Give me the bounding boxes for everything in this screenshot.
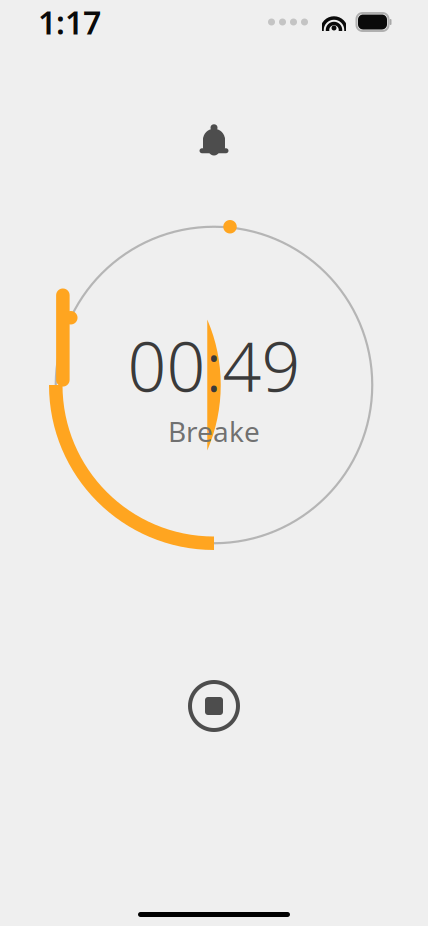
staticText: 00:49 — [127, 320, 300, 411]
staticText: 1:17 — [38, 1, 101, 43]
staticText: Breake — [168, 413, 260, 450]
button[interactable]: Stop — [178, 670, 250, 742]
